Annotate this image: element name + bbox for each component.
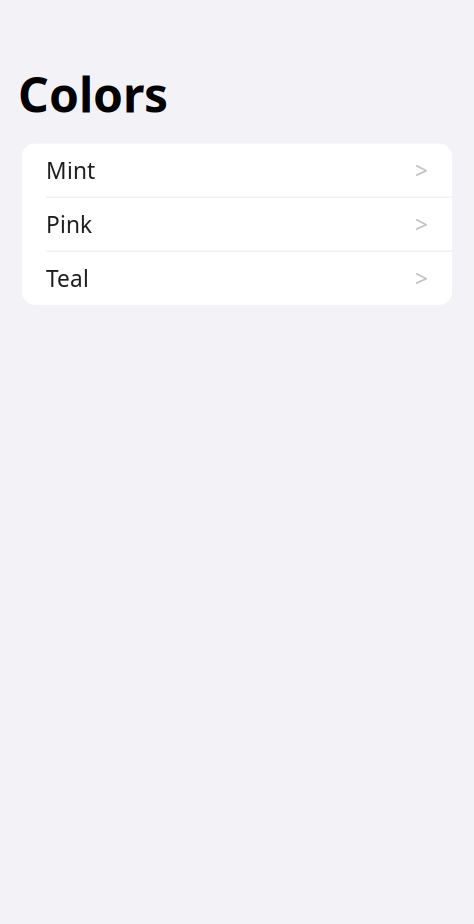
staticText: Mint <box>46 155 95 185</box>
staticText: > <box>415 209 428 239</box>
staticText: Teal <box>46 263 89 293</box>
button[interactable]: Mint <box>22 144 452 197</box>
staticText: > <box>415 155 428 185</box>
staticText: Colors <box>18 62 168 126</box>
button[interactable]: Teal <box>22 252 452 305</box>
button[interactable]: Pink <box>22 198 452 251</box>
staticText: > <box>415 263 428 293</box>
staticText: Pink <box>46 209 92 239</box>
